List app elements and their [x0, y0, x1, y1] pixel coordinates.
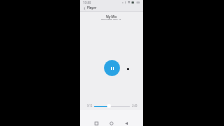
staticText: 10:30: [83, 1, 92, 5]
button[interactable]: Stop: [125, 66, 131, 72]
staticText: 2:40: [132, 104, 138, 108]
button[interactable]: Recent apps: [93, 120, 100, 126]
staticText: 0:12: [87, 104, 93, 108]
staticText: Recorded May 12: [101, 17, 122, 20]
staticText: Player: [87, 6, 97, 10]
button[interactable]: Home: [108, 120, 115, 126]
staticText: My Mix: [106, 15, 117, 19]
button[interactable]: Back: [81, 5, 87, 11]
button[interactable]: Pause: [104, 60, 120, 76]
button[interactable]: Back: [123, 120, 130, 126]
